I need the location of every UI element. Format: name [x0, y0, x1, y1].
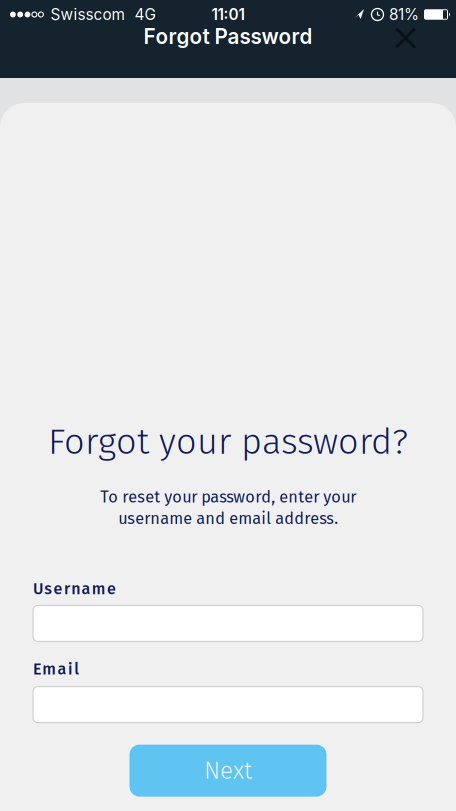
staticText: 81% [389, 5, 419, 24]
staticText: Forgot Password [143, 24, 312, 49]
button[interactable]: Close [383, 26, 456, 56]
staticText: 11:01 [211, 5, 244, 24]
staticText: Forgot your password? [48, 420, 408, 463]
button[interactable]: Next [129, 745, 326, 797]
staticText: Swisscom [50, 5, 124, 24]
staticText: Email [33, 659, 79, 679]
staticText: Username [33, 579, 116, 598]
staticText: Next [204, 756, 252, 785]
staticText: 4G [134, 5, 155, 24]
staticText: To reset your password, enter your usern… [100, 487, 356, 528]
